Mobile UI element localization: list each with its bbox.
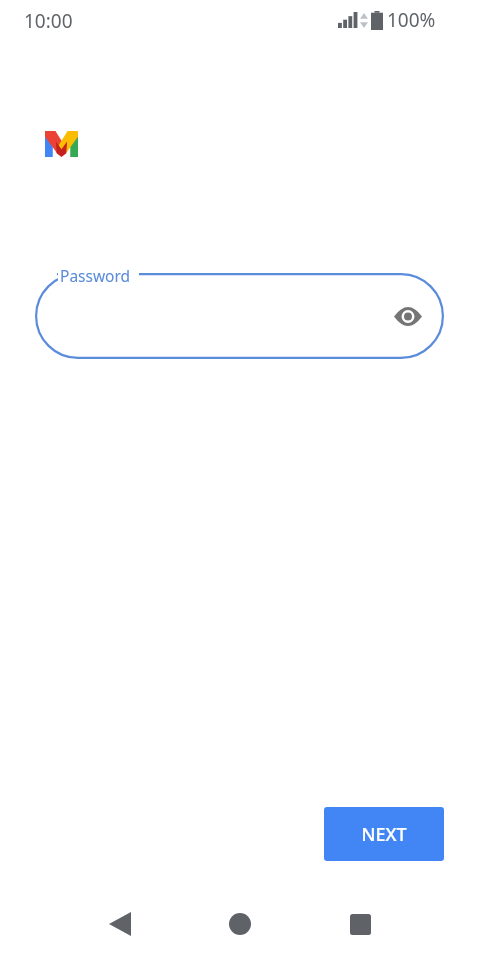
staticText: NEXT — [361, 822, 407, 847]
button[interactable]: Back — [96, 900, 144, 948]
staticText: Password — [60, 265, 131, 286]
button[interactable]: Show password — [35, 273, 444, 359]
staticText: 100% — [387, 7, 436, 33]
button[interactable]: Recent apps — [336, 900, 384, 948]
button[interactable]: NEXT — [324, 807, 444, 861]
button[interactable]: Home — [216, 900, 264, 948]
staticText: 10:00 — [24, 8, 73, 34]
button[interactable]: Show password — [386, 294, 430, 338]
